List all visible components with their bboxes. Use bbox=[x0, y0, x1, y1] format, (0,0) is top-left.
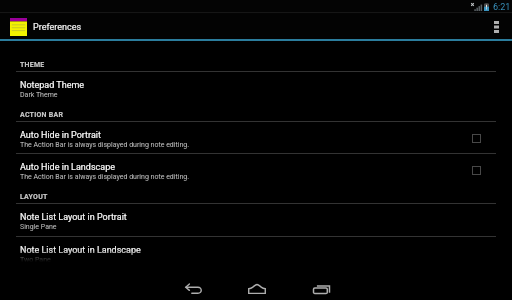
staticText: Notepad Theme bbox=[20, 80, 85, 91]
staticText: Single Pane bbox=[20, 223, 57, 231]
staticText: The Action Bar is always displayed durin… bbox=[20, 173, 190, 181]
staticText: ACTION BAR bbox=[20, 111, 64, 119]
button[interactable]: Note List Layout in Landscape bbox=[0, 237, 512, 262]
staticText: Two Pane bbox=[20, 256, 51, 262]
staticText: The Action Bar is always displayed durin… bbox=[20, 141, 190, 149]
staticText: Preferences bbox=[33, 22, 82, 33]
button[interactable]: More options bbox=[480, 14, 512, 39]
button[interactable]: Note List Layout in Portrait bbox=[0, 204, 512, 236]
button[interactable]: Notepad Theme bbox=[0, 72, 512, 104]
staticText: Note List Layout in Portrait bbox=[20, 212, 127, 223]
staticText: 6:21 bbox=[493, 2, 511, 13]
button[interactable]: Auto Hide in Landscape bbox=[0, 154, 512, 186]
button[interactable]: Home bbox=[238, 277, 276, 300]
button[interactable]: Preferences bbox=[0, 14, 512, 39]
staticText: Auto Hide in Landscape bbox=[20, 162, 115, 173]
staticText: LAYOUT bbox=[20, 193, 48, 201]
staticText: THEME bbox=[20, 61, 45, 69]
button[interactable]: Back bbox=[174, 277, 212, 300]
button[interactable]: Auto Hide in Portrait bbox=[0, 122, 512, 153]
staticText: Auto Hide in Portrait bbox=[20, 130, 101, 141]
button[interactable]: Recent apps bbox=[301, 277, 339, 300]
staticText: Dark Theme bbox=[20, 91, 58, 99]
staticText: Note List Layout in Landscape bbox=[20, 245, 141, 256]
